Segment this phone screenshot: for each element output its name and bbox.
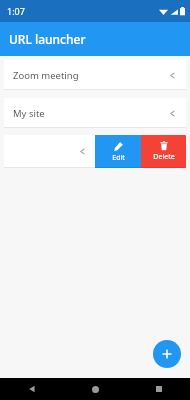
staticText: URL launcher	[9, 31, 86, 47]
button[interactable]: Zoom meeting	[4, 60, 186, 90]
staticText: Delete	[153, 152, 175, 162]
button[interactable]: Home	[64, 378, 127, 400]
button[interactable]: Back	[0, 378, 64, 400]
button[interactable]	[4, 135, 95, 168]
staticText: My site	[13, 107, 169, 120]
button[interactable]: My site	[4, 98, 186, 128]
button[interactable]: Add URL	[153, 340, 181, 368]
staticText: Edit	[112, 153, 125, 163]
staticText: 1:07	[7, 5, 25, 17]
button[interactable]: Recent apps	[127, 378, 190, 400]
button[interactable]: Edit	[95, 135, 141, 168]
button[interactable]: Delete	[141, 135, 186, 168]
staticText: Zoom meeting	[13, 69, 169, 82]
